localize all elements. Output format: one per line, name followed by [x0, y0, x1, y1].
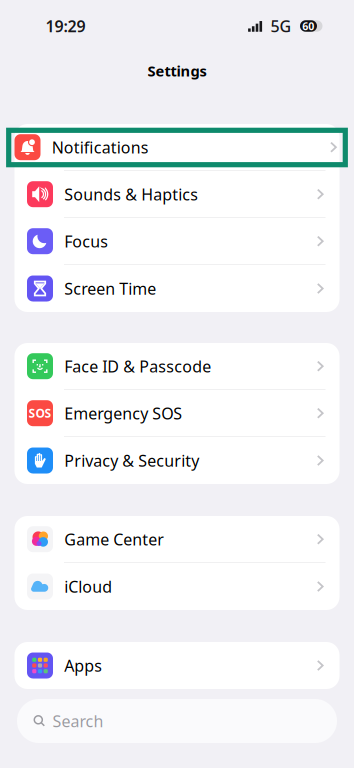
button[interactable]: Apps: [14, 642, 339, 689]
button[interactable]: Privacy & Security: [14, 437, 339, 484]
staticText: Emergency SOS: [64, 403, 182, 424]
staticText: Game Center: [64, 529, 164, 550]
button[interactable]: Game Center: [14, 516, 339, 563]
button[interactable]: Focus: [14, 218, 339, 265]
staticText: 19:29: [45, 15, 85, 37]
button[interactable]: iCloud: [14, 563, 339, 610]
button[interactable]: Notifications: [14, 124, 339, 171]
staticText: Settings: [147, 61, 206, 80]
staticText: Focus: [64, 231, 108, 252]
button[interactable]: Sounds & Haptics: [14, 171, 339, 218]
staticText: Sounds & Haptics: [64, 184, 198, 205]
button[interactable]: Face ID & Passcode: [14, 343, 339, 390]
staticText: Screen Time: [64, 278, 156, 299]
button[interactable]: SOS: [14, 390, 339, 437]
staticText: Privacy & Security: [64, 450, 199, 471]
staticText: Apps: [64, 655, 102, 676]
button[interactable]: Screen Time: [14, 265, 339, 312]
staticText: SOS: [28, 405, 51, 421]
staticText: Face ID & Passcode: [64, 356, 211, 377]
staticText: iCloud: [64, 576, 112, 597]
staticText: Search: [52, 710, 103, 732]
staticText: 60: [302, 19, 314, 33]
staticText: 5G: [270, 15, 291, 37]
button[interactable]: Search: [0, 699, 354, 743]
staticText: Notifications: [52, 137, 149, 158]
